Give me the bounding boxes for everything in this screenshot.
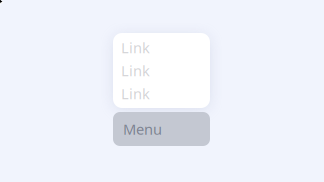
staticText: Link <box>121 61 150 80</box>
button[interactable]: Link <box>121 59 201 82</box>
button[interactable]: Link <box>121 82 201 105</box>
button[interactable]: Menu <box>113 112 210 146</box>
staticText: Link <box>121 84 150 103</box>
staticText: Menu <box>123 119 162 139</box>
button[interactable]: Link <box>121 36 201 59</box>
staticText: Link <box>121 38 150 57</box>
